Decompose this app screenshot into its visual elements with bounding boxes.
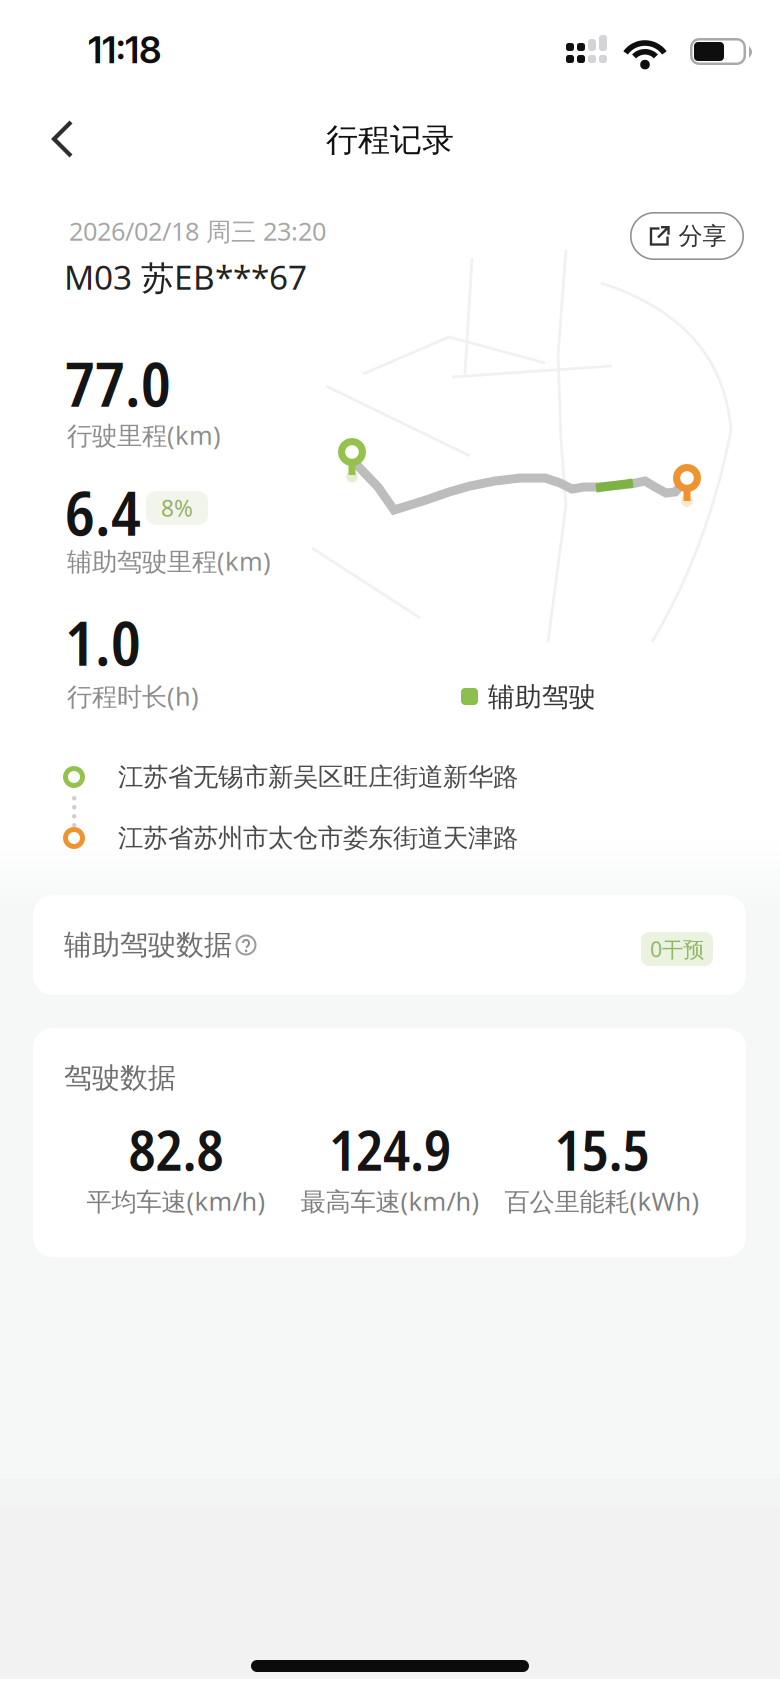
button[interactable]: 辅助驾驶数据说明 — [231, 930, 261, 960]
staticText: 15.5 — [554, 1111, 649, 1187]
staticText: 江苏省无锡市新吴区旺庄街道新华路 — [118, 761, 518, 792]
staticText: 江苏省苏州市太仓市娄东街道天津路 — [118, 822, 518, 853]
button[interactable]: 分享 — [630, 212, 744, 260]
staticText: 分享 — [678, 221, 726, 251]
staticText: 辅助驾驶 — [488, 681, 596, 713]
staticText: 行程记录 — [326, 120, 454, 160]
staticText: 驾驶数据 — [64, 1061, 176, 1095]
staticText: 辅助驾驶数据 — [64, 928, 232, 962]
staticText: 行驶里程(km) — [67, 418, 221, 452]
staticText: 8% — [161, 493, 193, 523]
staticText: 行程时长(h) — [67, 679, 199, 713]
staticText: 6.4 — [65, 470, 141, 554]
staticText: 77.0 — [65, 341, 171, 425]
staticText: 11:18 — [88, 28, 161, 72]
staticText: 百公里能耗(kWh) — [504, 1184, 699, 1218]
staticText: 2026/02/18 周三 23:20 — [69, 214, 326, 248]
staticText: 82.8 — [128, 1111, 223, 1187]
staticText: 124.9 — [329, 1111, 451, 1187]
staticText: 平均车速(km/h) — [86, 1184, 265, 1218]
staticText: 辅助驾驶里程(km) — [67, 544, 271, 578]
staticText: 最高车速(km/h) — [300, 1184, 479, 1218]
staticText: 1.0 — [65, 600, 141, 684]
button[interactable]: Back — [41, 117, 85, 161]
staticText: M03 苏EB***67 — [64, 255, 307, 299]
staticText: 0干预 — [650, 935, 704, 963]
